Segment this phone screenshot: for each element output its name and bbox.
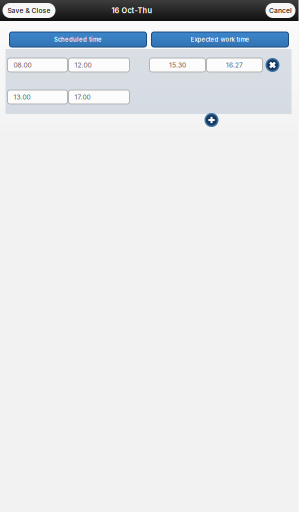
button[interactable]: Save & Close xyxy=(2,3,55,18)
staticText: Save & Close xyxy=(7,6,50,15)
button[interactable]: Cancel xyxy=(265,3,295,18)
staticText: Expected work time xyxy=(190,36,249,43)
staticText: 15.30 xyxy=(169,61,186,69)
staticText: 16.27 xyxy=(226,61,243,69)
button[interactable]: Remove xyxy=(265,58,279,72)
staticText: Cancel xyxy=(269,6,292,15)
staticText: 13.00 xyxy=(13,93,30,101)
button[interactable]: 15.30 xyxy=(149,58,205,72)
button[interactable]: 08.00 xyxy=(7,58,67,72)
staticText: 16 Oct-Thu xyxy=(111,6,152,15)
button[interactable]: Add xyxy=(204,113,218,127)
staticText: 08.00 xyxy=(13,61,31,69)
staticText: 17.00 xyxy=(74,93,90,101)
button[interactable]: 12.00 xyxy=(68,58,129,72)
button[interactable]: 16.27 xyxy=(206,58,262,72)
button[interactable]: 17.00 xyxy=(68,90,129,104)
button[interactable]: 13.00 xyxy=(7,90,67,104)
staticText: Scheduled time xyxy=(54,36,102,43)
staticText: 12.00 xyxy=(74,61,91,69)
button[interactable]: Expected work time xyxy=(151,32,288,47)
button[interactable]: Scheduled time xyxy=(9,32,146,47)
